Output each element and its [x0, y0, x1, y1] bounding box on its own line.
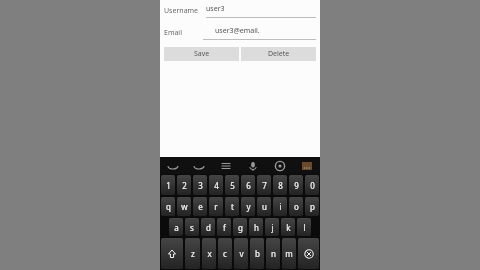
button[interactable]: g	[233, 218, 247, 236]
staticText: w	[181, 201, 188, 212]
button[interactable]: f	[217, 218, 231, 236]
button[interactable]: e	[193, 197, 207, 216]
staticText: y	[246, 201, 251, 212]
staticText: t	[231, 201, 234, 212]
button[interactable]: y	[241, 197, 255, 216]
staticText: 9	[294, 180, 299, 191]
staticText: Email	[164, 28, 182, 38]
button[interactable]: Settings	[266, 157, 293, 174]
button[interactable]	[298, 238, 319, 269]
button[interactable]: 0	[305, 175, 319, 195]
button[interactable]: Delete	[241, 47, 316, 61]
staticText: p	[310, 201, 315, 212]
button[interactable]: user3	[206, 3, 316, 19]
button[interactable]: Clipboard	[160, 157, 186, 174]
staticText: Save	[194, 49, 210, 59]
button[interactable]: k	[281, 218, 295, 236]
staticText: n	[271, 248, 276, 259]
button[interactable]: n	[266, 238, 280, 269]
button[interactable]: h	[249, 218, 263, 236]
button[interactable]: 9	[289, 175, 303, 195]
staticText: d	[206, 222, 211, 233]
button[interactable]: o	[289, 197, 303, 216]
staticText: 1	[166, 180, 171, 191]
button[interactable]: c	[218, 238, 232, 269]
staticText: 3	[198, 180, 203, 191]
button[interactable]: z	[185, 238, 200, 269]
staticText: k	[286, 222, 291, 233]
staticText: e	[198, 201, 203, 212]
button[interactable]: 8	[273, 175, 287, 195]
button[interactable]: 4	[209, 175, 223, 195]
button[interactable]: t	[225, 197, 239, 216]
staticText: v	[239, 248, 244, 259]
button[interactable]: Menu	[212, 157, 239, 174]
button[interactable]: u	[257, 197, 271, 216]
button[interactable]: x	[202, 238, 216, 269]
staticText: user3@email.	[215, 26, 260, 36]
button[interactable]: Save	[164, 47, 239, 61]
staticText: q	[166, 201, 171, 212]
button[interactable]	[161, 238, 183, 269]
staticText: c	[223, 248, 227, 259]
button[interactable]: 2	[177, 175, 191, 195]
staticText: b	[255, 248, 260, 259]
button[interactable]: Emoji	[186, 157, 212, 174]
staticText: u	[262, 201, 267, 212]
button[interactable]: 3	[193, 175, 207, 195]
button[interactable]: i	[273, 197, 287, 216]
staticText: user3	[206, 4, 225, 14]
staticText: m	[285, 248, 293, 259]
staticText: Delete	[268, 49, 290, 59]
staticText: 2	[182, 180, 187, 191]
button[interactable]: l	[297, 218, 311, 236]
staticText: 6	[246, 180, 251, 191]
staticText: r	[214, 201, 218, 212]
button[interactable]: 6	[241, 175, 255, 195]
button[interactable]: p	[305, 197, 319, 216]
staticText: 8	[278, 180, 283, 191]
button[interactable]: w	[177, 197, 191, 216]
staticText: s	[190, 222, 194, 233]
button[interactable]: Voice input	[239, 157, 266, 174]
button[interactable]: More	[293, 157, 320, 174]
staticText: 7	[262, 180, 267, 191]
staticText: l	[303, 222, 306, 233]
button[interactable]: 5	[225, 175, 239, 195]
staticText: i	[279, 201, 282, 212]
button[interactable]: user3@email.	[203, 25, 316, 41]
button[interactable]: b	[250, 238, 264, 269]
button[interactable]: v	[234, 238, 248, 269]
staticText: h	[254, 222, 259, 233]
button[interactable]: a	[169, 218, 183, 236]
staticText: j	[271, 222, 274, 233]
button[interactable]: 1	[161, 175, 175, 195]
button[interactable]: j	[265, 218, 279, 236]
staticText: a	[174, 222, 179, 233]
button[interactable]: r	[209, 197, 223, 216]
button[interactable]: s	[185, 218, 199, 236]
staticText: 0	[310, 180, 315, 191]
staticText: x	[207, 248, 212, 259]
button[interactable]: d	[201, 218, 215, 236]
staticText: 4	[214, 180, 219, 191]
staticText: 5	[230, 180, 235, 191]
staticText: g	[238, 222, 243, 233]
button[interactable]: 7	[257, 175, 271, 195]
button[interactable]: m	[282, 238, 296, 269]
staticText: z	[191, 248, 195, 259]
staticText: Username	[164, 6, 199, 16]
button[interactable]: q	[161, 197, 175, 216]
staticText: f	[223, 222, 226, 233]
staticText: o	[294, 201, 299, 212]
